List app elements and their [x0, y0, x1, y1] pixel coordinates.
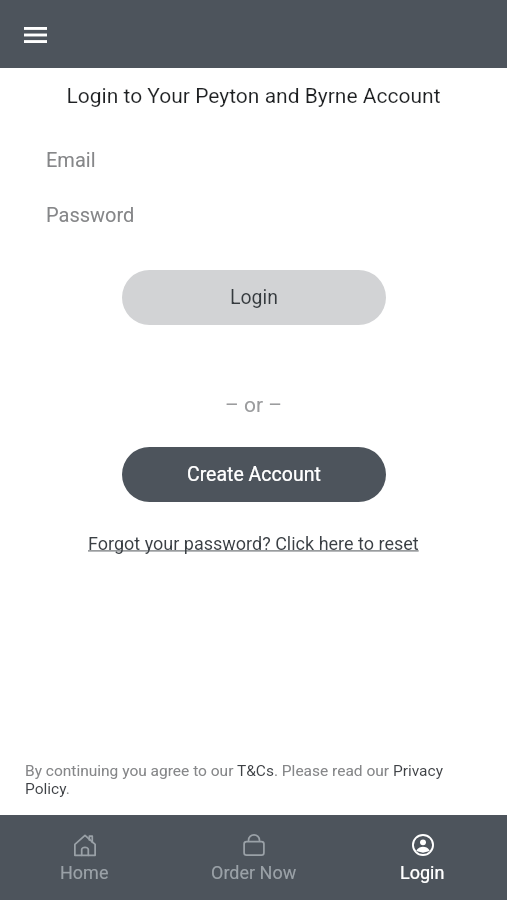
staticText: Login — [230, 286, 279, 309]
staticText: Login to Your Peyton and Byrne Account — [0, 84, 507, 109]
button[interactable]: Open navigation menu — [11, 11, 59, 59]
staticText: Password — [46, 203, 135, 226]
staticText: Email — [46, 148, 96, 171]
button[interactable]: Login — [338, 815, 507, 900]
staticText: Home — [60, 862, 109, 883]
button[interactable]: Home — [0, 815, 169, 900]
staticText: Create Account — [187, 463, 321, 486]
staticText: – or – — [0, 393, 507, 418]
staticText: Order Now — [211, 862, 297, 883]
staticText: By continuing you agree to our T&Cs. Ple… — [25, 762, 457, 798]
button[interactable]: Login — [122, 270, 386, 325]
button[interactable]: Order Now — [169, 815, 338, 900]
button[interactable]: Forgot your password? Click here to rese… — [88, 533, 419, 554]
staticText: Login — [400, 862, 445, 883]
button[interactable]: Create Account — [122, 447, 386, 502]
